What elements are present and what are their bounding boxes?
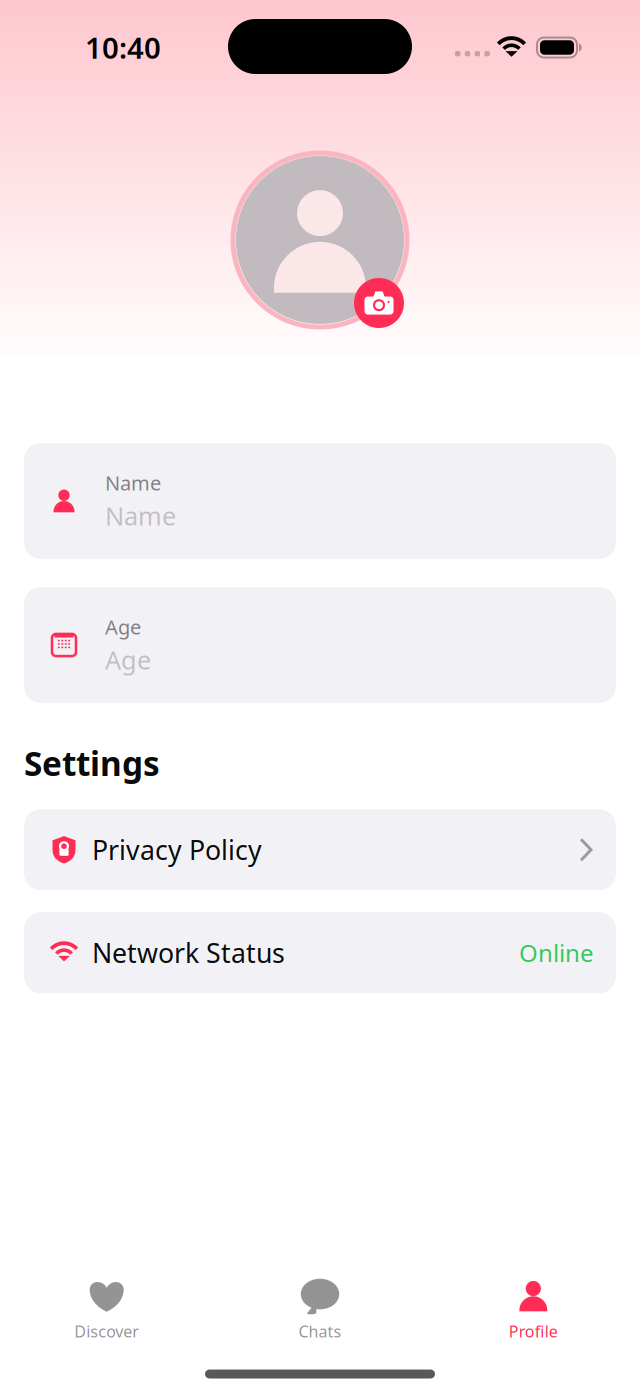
button[interactable]: Profile <box>427 1275 640 1346</box>
staticText: Name <box>105 499 176 533</box>
staticText: Chats <box>298 1321 341 1342</box>
staticText: Age <box>105 613 141 640</box>
button[interactable]: Chats <box>213 1275 427 1346</box>
staticText: Name <box>105 469 161 496</box>
button[interactable]: Age <box>24 587 616 703</box>
staticText: Network Status <box>92 935 285 970</box>
button[interactable]: Discover <box>0 1275 213 1346</box>
button[interactable]: Network Status <box>24 912 616 993</box>
staticText: Online <box>519 937 594 969</box>
button[interactable]: Change profile photo <box>226 146 414 334</box>
staticText: Privacy Policy <box>92 832 262 867</box>
staticText: Profile <box>509 1321 558 1342</box>
button[interactable]: Name <box>24 443 616 559</box>
staticText: Age <box>105 643 151 677</box>
button[interactable]: Privacy Policy <box>24 809 616 890</box>
staticText: Settings <box>24 741 160 785</box>
staticText: Discover <box>74 1321 139 1342</box>
staticText: 10:40 <box>85 28 161 67</box>
